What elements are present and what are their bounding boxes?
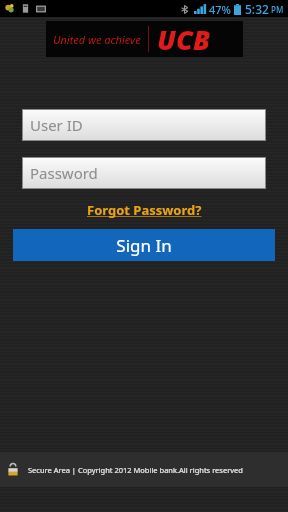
button[interactable]: User ID [23,110,265,140]
staticText: Sign In [116,234,172,257]
staticText: United we achieve [53,32,141,47]
staticText: UCB [157,21,211,57]
staticText: 47% [209,2,231,17]
staticText: 5:32 [245,1,269,17]
button[interactable]: Sign In [13,229,275,261]
staticText: User ID [30,115,83,135]
staticText: PM [271,4,284,15]
staticText: Forgot Password? [87,201,202,219]
button[interactable]: Password [23,158,265,188]
staticText: Secure Area | Copyright 2012 Mobile bank… [28,465,243,475]
button[interactable]: Forgot Password? [81,199,208,221]
other: Secure [8,463,18,476]
staticText: Password [30,163,98,183]
